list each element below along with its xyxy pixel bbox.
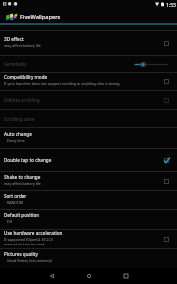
staticText: Use hardware acceleration	[4, 230, 63, 236]
button[interactable]: Shake to change	[0, 172, 177, 190]
staticText: Compatibility mode	[4, 74, 48, 80]
staticText: If your launcher does not support scroll…	[4, 81, 120, 86]
staticText: Every time	[7, 138, 25, 143]
button[interactable]: Home	[70, 268, 107, 284]
button[interactable]: Use hardware acceleration	[0, 230, 177, 248]
button[interactable]: Sensitivity	[0, 56, 177, 72]
button[interactable]: Pictures quality	[0, 249, 177, 268]
button[interactable]: Scrolling zone	[0, 110, 177, 127]
staticText: Infinite scrolling	[4, 97, 40, 103]
staticText: If supported (OpenGL ES 2.0) manual rest…	[4, 237, 53, 245]
staticText: Auto change	[4, 131, 32, 137]
button[interactable]: Compatibility mode	[0, 73, 177, 90]
staticText: Scrolling zone	[4, 116, 35, 122]
button[interactable]: Auto change	[0, 128, 177, 148]
staticText: Good (faster, less memory)	[7, 258, 52, 263]
button[interactable]: 3D effect	[0, 31, 177, 55]
staticText: Pictures quality	[4, 251, 38, 257]
staticText: Sort order	[4, 193, 27, 199]
staticText: FiveWallpapers	[20, 13, 61, 21]
staticText: RANDOM	[7, 200, 23, 205]
staticText: Double tap to change	[4, 157, 52, 163]
staticText: Sensitivity	[4, 61, 27, 67]
button[interactable]: Recent apps	[107, 268, 144, 284]
button[interactable]: Double tap to change	[0, 149, 177, 171]
button[interactable]: Infinite scrolling	[0, 91, 177, 109]
button[interactable]: Sort order	[0, 191, 177, 209]
staticText: 1:53	[166, 2, 176, 9]
staticText: may affect battery life	[4, 181, 41, 186]
staticText: 3D effect	[4, 36, 24, 42]
button[interactable]: Back	[33, 268, 70, 284]
staticText: may affect battery life	[4, 43, 41, 48]
button[interactable]: Default position	[0, 210, 177, 229]
staticText: Fill	[7, 219, 12, 224]
staticText: Shake to change	[4, 174, 41, 180]
staticText: Default position	[4, 212, 40, 218]
